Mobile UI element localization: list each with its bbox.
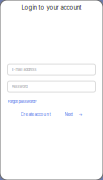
staticText: Password [11,84,27,89]
staticText: Login to your account [21,4,81,11]
button[interactable]: Create account [20,112,50,117]
staticText: Forgot password? [7,99,36,104]
button[interactable]: Next [64,112,82,117]
staticText: Next [64,112,72,117]
button[interactable]: Forgot password? [7,99,36,104]
staticText: E-mail address [11,67,36,72]
staticText: → [78,112,82,117]
button[interactable]: Password [7,81,95,92]
staticText: Create account [20,112,50,117]
button[interactable]: E-mail address [7,64,95,75]
